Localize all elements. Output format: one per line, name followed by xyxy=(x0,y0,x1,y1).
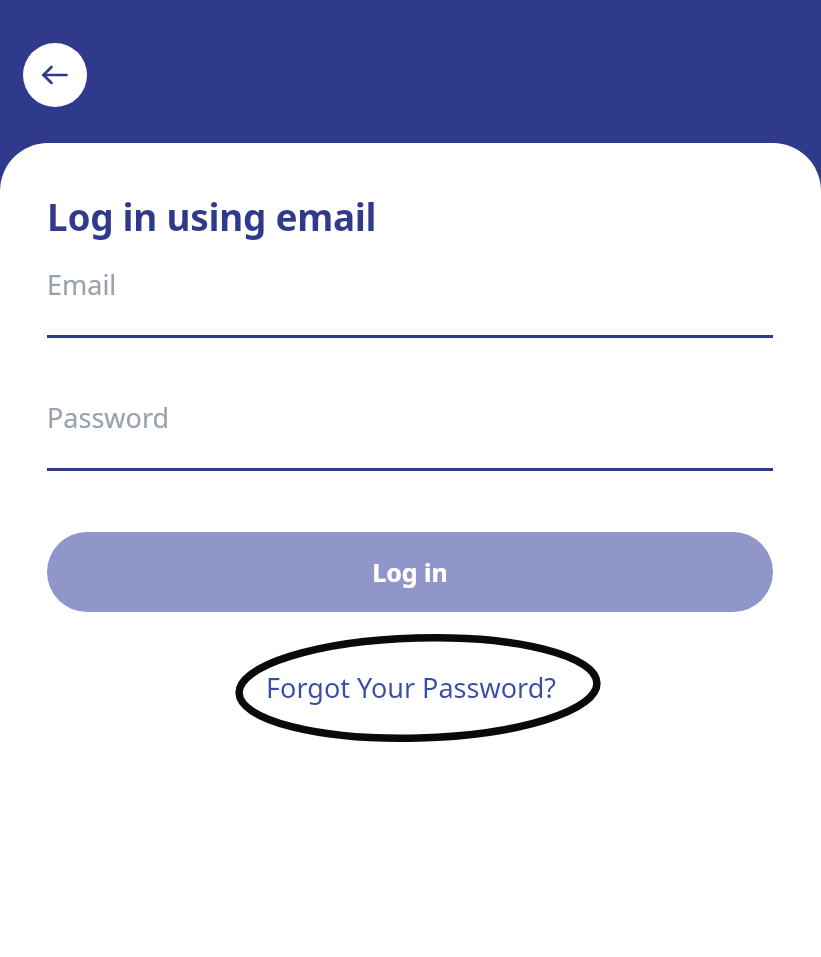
button[interactable]: Log in xyxy=(47,532,773,612)
staticText: Password xyxy=(47,399,170,436)
button[interactable]: Email xyxy=(47,266,773,338)
button[interactable]: Forgot Your Password? xyxy=(266,669,556,706)
staticText: Email xyxy=(47,266,117,303)
button[interactable]: Back xyxy=(23,43,87,107)
staticText: Log in xyxy=(372,555,448,589)
staticText: Log in using email xyxy=(47,191,377,241)
staticText: Forgot Your Password? xyxy=(266,669,556,706)
button[interactable]: Password xyxy=(47,399,773,471)
